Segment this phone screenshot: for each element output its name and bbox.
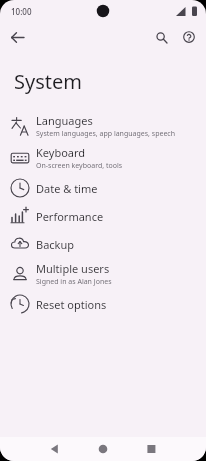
staticText: Backup <box>36 237 75 252</box>
button[interactable]: Performance <box>0 202 206 230</box>
staticText: Keyboard <box>36 145 86 160</box>
staticText: Reset options <box>36 297 107 312</box>
button[interactable]: Search <box>149 25 173 49</box>
button[interactable]: Back <box>5 25 29 49</box>
button[interactable]: Multiple users <box>0 258 206 290</box>
staticText: Multiple users <box>36 261 110 276</box>
staticText: Languages <box>36 113 93 128</box>
staticText: System <box>14 68 82 95</box>
staticText: On-screen keyboard, tools <box>36 161 123 171</box>
button[interactable]: Languages <box>0 110 206 142</box>
staticText: System languages, app languages, speech <box>36 129 176 139</box>
button[interactable]: Keyboard <box>0 142 206 174</box>
staticText: Signed in as Alan Jones <box>36 277 112 287</box>
button[interactable]: Backup <box>0 230 206 258</box>
button[interactable]: Help <box>177 25 201 49</box>
button[interactable]: Reset options <box>0 290 206 318</box>
staticText: Performance <box>36 209 104 224</box>
staticText: Date & time <box>36 181 98 196</box>
staticText: 10:00 <box>11 6 32 17</box>
button[interactable]: Date & time <box>0 174 206 202</box>
